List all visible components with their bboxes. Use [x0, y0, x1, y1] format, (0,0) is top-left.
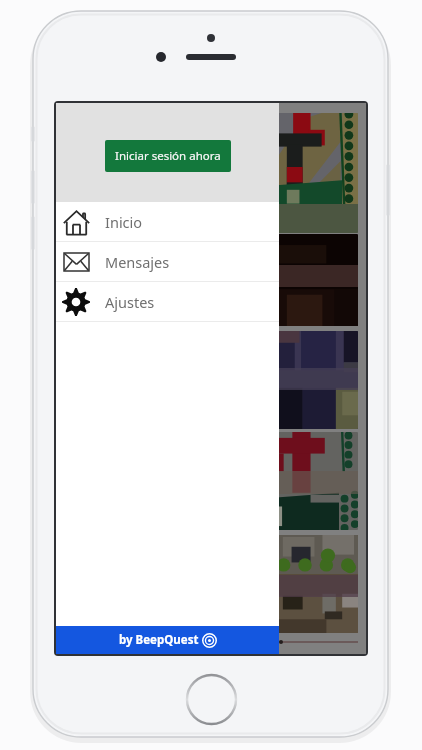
- button[interactable]: Mensajes: [56, 242, 279, 282]
- button[interactable]: [64, 331, 358, 429]
- staticText: Ajustes: [105, 292, 155, 312]
- button[interactable]: [64, 234, 358, 326]
- button[interactable]: [64, 113, 358, 233]
- staticText: Iniciar sesión ahora: [115, 148, 221, 164]
- button[interactable]: Iniciar sesión ahora: [105, 140, 231, 172]
- button[interactable]: [64, 535, 358, 633]
- button[interactable]: [64, 432, 358, 530]
- button[interactable]: Inicio: [56, 202, 279, 242]
- staticText: Inicio: [105, 212, 143, 232]
- staticText: Mensajes: [105, 252, 170, 272]
- button[interactable]: by BeepQuest: [56, 626, 279, 654]
- button[interactable]: Ajustes: [56, 282, 279, 322]
- staticText: by BeepQuest: [119, 632, 199, 648]
